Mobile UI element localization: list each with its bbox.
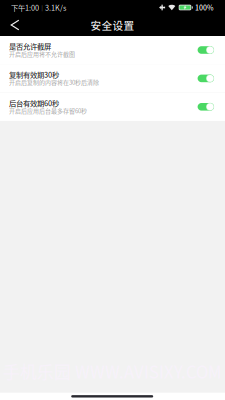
staticText: 安全设置 (90, 17, 134, 33)
staticText: 开启后复制的内容将在30秒后清除 (9, 78, 99, 87)
staticText: 100% (195, 2, 214, 12)
staticText: 后台有效期60秒 (9, 98, 59, 108)
button[interactable]: 后台有效期60秒 (0, 93, 225, 121)
staticText: 3.1K/s (45, 2, 66, 13)
staticText: 复制有效期30秒 (9, 69, 59, 80)
button[interactable]: 是否允许截屏 (0, 36, 225, 64)
button[interactable]: 复制有效期30秒 (0, 64, 225, 92)
staticText: 是否允许截屏 (9, 41, 51, 51)
staticText: 下午1:00 (11, 2, 39, 13)
staticText: 开启后应用将不允许截图 (9, 49, 75, 58)
button[interactable]: 返回 (2, 13, 28, 37)
staticText: ｜ (39, 3, 45, 12)
staticText: 开启后应用后台最多存留60秒 (9, 106, 87, 115)
